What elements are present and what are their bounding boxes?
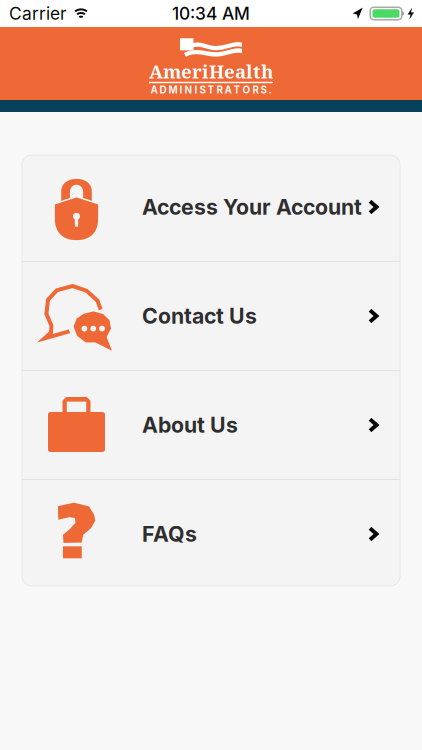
staticText: AmeriHealth — [149, 59, 273, 84]
button[interactable]: FAQs — [22, 480, 400, 588]
staticText: About Us — [142, 412, 238, 438]
staticText: 10:34 AM — [172, 3, 250, 24]
staticText: Access Your Account — [142, 194, 362, 220]
staticText: A D M I N I S T R A T O R S . — [150, 84, 271, 96]
staticText: Contact Us — [142, 303, 257, 329]
button[interactable]: Access Your Account — [22, 153, 400, 261]
button[interactable]: About Us — [22, 371, 400, 479]
staticText: FAQs — [142, 521, 197, 547]
button[interactable]: Contact Us — [22, 262, 400, 370]
staticText: Carrier — [9, 3, 67, 24]
